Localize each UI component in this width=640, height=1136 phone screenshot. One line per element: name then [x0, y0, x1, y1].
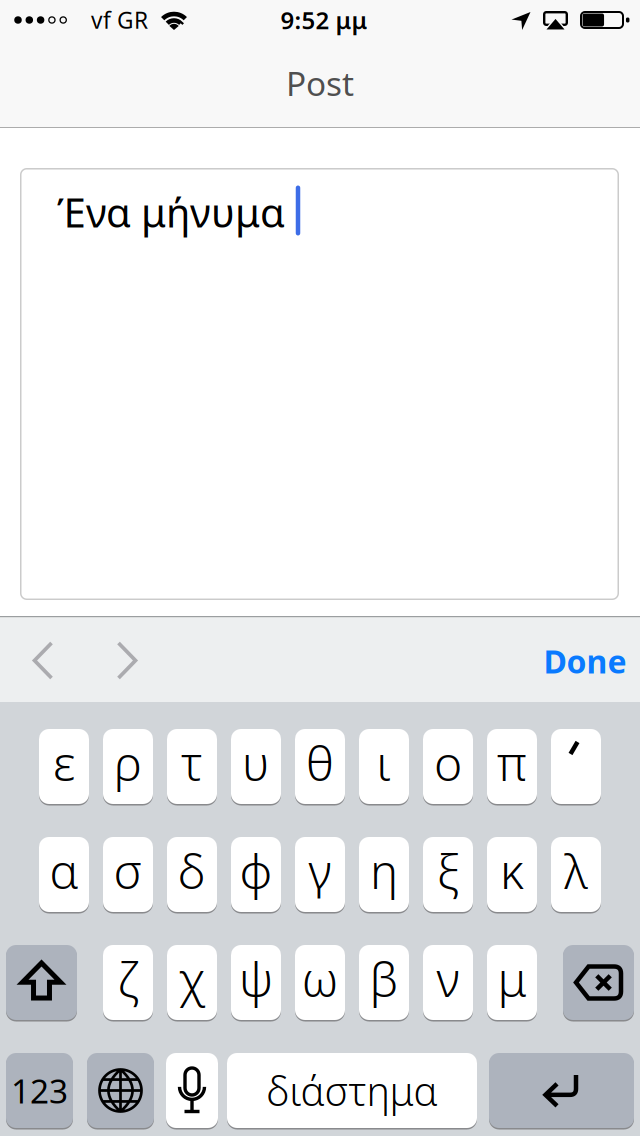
button[interactable]: η: [359, 836, 409, 913]
button[interactable]: ψ: [231, 944, 281, 1021]
button[interactable]: σ: [103, 836, 153, 913]
button[interactable]: ι: [359, 728, 409, 805]
staticText: β: [369, 947, 398, 1010]
button[interactable]: Dictate: [166, 1052, 218, 1129]
staticText: διάστημα: [266, 1064, 437, 1117]
staticText: φ: [239, 839, 272, 902]
staticText: τ: [181, 731, 203, 794]
button[interactable]: Done: [525, 629, 640, 693]
staticText: ζ: [117, 947, 138, 1010]
button[interactable]: κ: [487, 836, 537, 913]
button[interactable]: τ: [167, 728, 217, 805]
staticText: χ: [178, 947, 205, 1010]
button[interactable]: Next: [105, 628, 149, 692]
staticText: vf GR: [91, 5, 148, 35]
button[interactable]: ω: [295, 944, 345, 1021]
button[interactable]: α: [39, 836, 89, 913]
button[interactable]: β: [359, 944, 409, 1021]
button[interactable]: Return: [489, 1052, 634, 1129]
staticText: η: [370, 839, 398, 902]
staticText: 123: [11, 1068, 68, 1113]
staticText: σ: [113, 839, 142, 902]
staticText: Done: [543, 640, 626, 682]
staticText: ν: [436, 947, 459, 1010]
staticText: δ: [178, 839, 206, 902]
staticText: λ: [564, 839, 588, 902]
button[interactable]: γ: [295, 836, 345, 913]
staticText: Ένα μήνυμα: [57, 185, 285, 238]
button[interactable]: Next keyboard: [87, 1052, 154, 1129]
button[interactable]: Previous: [21, 628, 65, 692]
staticText: μ: [497, 947, 526, 1010]
button[interactable]: Shift: [6, 944, 77, 1021]
staticText: ε: [53, 731, 75, 794]
button[interactable]: ν: [423, 944, 473, 1021]
button[interactable]: ρ: [103, 728, 153, 805]
button[interactable]: ε: [39, 728, 89, 805]
button[interactable]: ζ: [103, 944, 153, 1021]
button[interactable]: π: [487, 728, 537, 805]
button[interactable]: μ: [487, 944, 537, 1021]
staticText: κ: [500, 839, 524, 902]
button[interactable]: ξ: [423, 836, 473, 913]
staticText: θ: [306, 731, 334, 794]
button[interactable]: Delete: [563, 944, 634, 1021]
staticText: ι: [376, 731, 391, 794]
button[interactable]: φ: [231, 836, 281, 913]
button[interactable]: Numbers: [6, 1052, 73, 1129]
button[interactable]: λ: [551, 836, 601, 913]
button[interactable]: ο: [423, 728, 473, 805]
staticText: Post: [286, 61, 354, 105]
button[interactable]: tonos: [551, 728, 601, 805]
staticText: υ: [242, 731, 270, 794]
button[interactable]: υ: [231, 728, 281, 805]
staticText: ρ: [114, 731, 142, 794]
staticText: ω: [301, 947, 338, 1010]
staticText: γ: [308, 839, 331, 902]
button[interactable]: θ: [295, 728, 345, 805]
staticText: ο: [434, 731, 462, 794]
button[interactable]: χ: [167, 944, 217, 1021]
staticText: π: [497, 731, 527, 794]
staticText: 9:52 μμ: [280, 4, 367, 36]
staticText: ψ: [239, 947, 273, 1010]
staticText: ξ: [437, 839, 459, 902]
staticText: α: [49, 839, 78, 902]
button[interactable]: δ: [167, 836, 217, 913]
button[interactable]: space: [227, 1052, 477, 1129]
